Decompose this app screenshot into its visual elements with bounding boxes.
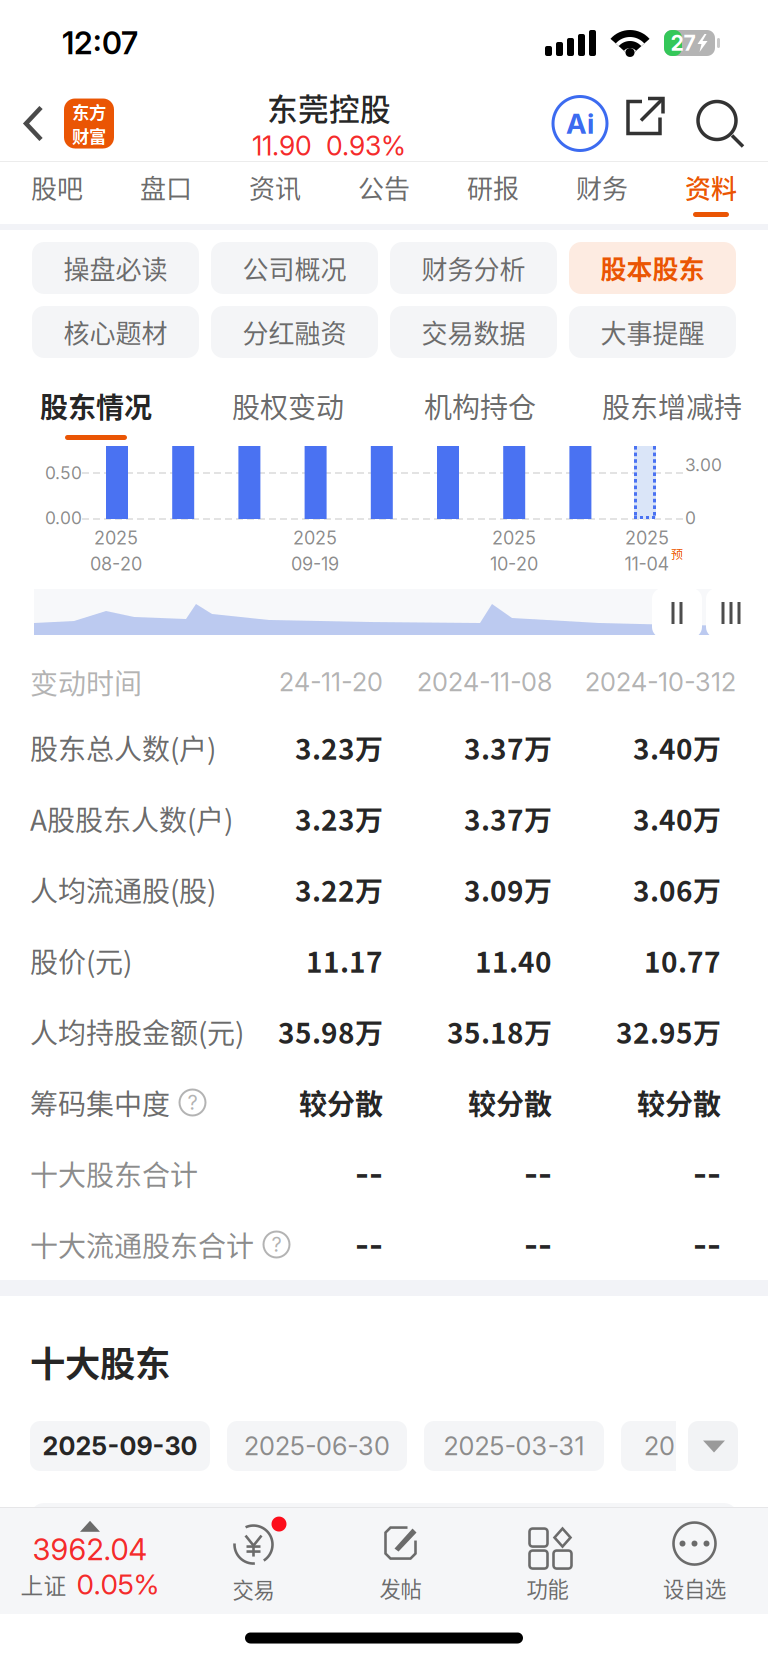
staticText: 0.50 (45, 462, 82, 483)
staticText: 分红融资 (242, 313, 346, 351)
button[interactable]: 2025-09-30 (30, 1421, 210, 1471)
staticText: ? (187, 1090, 197, 1115)
staticText: 10.77 (644, 940, 721, 981)
button[interactable]: AI助手 (544, 87, 616, 159)
staticText: 2025-06-30 (244, 1431, 390, 1461)
staticText: 12:07 (62, 24, 138, 61)
staticText: 盘口 (140, 168, 192, 206)
button[interactable]: 功能 (474, 1508, 621, 1614)
staticText: 交易 (232, 1574, 274, 1604)
button[interactable]: 搜索 (688, 87, 754, 159)
button[interactable]: 东方财富 (64, 98, 114, 148)
button[interactable]: 股吧 (2, 162, 111, 224)
button[interactable]: 双列 (652, 588, 702, 638)
staticText: 3.23万 (295, 727, 383, 768)
button[interactable]: 设自选 (621, 1508, 768, 1614)
staticText: 股权变动 (232, 385, 344, 426)
staticText: 2025 (492, 527, 536, 549)
staticText: 2024-11-08 (417, 667, 552, 697)
staticText: 3.22万 (295, 869, 383, 910)
button[interactable]: 操盘必读 (32, 242, 199, 294)
staticText: 11.17 (306, 940, 383, 981)
button[interactable]: 发帖 (327, 1508, 474, 1614)
button[interactable]: 机构持仓 (384, 372, 576, 444)
button[interactable]: 大事提醒 (569, 306, 736, 358)
staticText: 2025 (94, 527, 138, 549)
button[interactable]: 财务 (547, 162, 656, 224)
staticText: 上证 (20, 1568, 66, 1601)
staticText: 股东增减持 (602, 385, 742, 426)
staticText: 0.00 (45, 507, 82, 528)
staticText: 09-19 (291, 553, 339, 575)
button[interactable]: 股东情况 (0, 372, 192, 444)
staticText: 股价(元) (30, 940, 132, 981)
button[interactable]: 2025-06-30 (227, 1421, 407, 1471)
button[interactable]: 资讯 (220, 162, 329, 224)
staticText: 2 (721, 667, 736, 697)
button[interactable]: 返回 (4, 85, 64, 161)
staticText: 32.95万 (616, 1011, 721, 1052)
staticText: 操盘必读 (63, 249, 167, 287)
button[interactable]: 2025-03-31 (424, 1421, 604, 1471)
button[interactable]: 盘口 (111, 162, 220, 224)
button[interactable]: 3962.04 (0, 1508, 180, 1614)
staticText: 10-20 (490, 553, 538, 575)
staticText: 机构持仓 (424, 385, 536, 426)
staticText: 3.40万 (633, 727, 721, 768)
button[interactable]: 公司概况 (211, 242, 378, 294)
staticText: ? (271, 1232, 281, 1257)
staticText: 预 (671, 545, 683, 562)
staticText: 3.06万 (633, 869, 721, 910)
staticText: 0 (685, 507, 696, 528)
button[interactable]: 2025-12-31 (621, 1421, 768, 1471)
staticText: 较分散 (299, 1082, 383, 1123)
staticText: -- (524, 1226, 552, 1263)
button[interactable]: 核心题材 (32, 306, 199, 358)
button[interactable]: 资料 (656, 162, 765, 224)
staticText: 3.37万 (464, 727, 552, 768)
staticText: -- (524, 1155, 552, 1192)
staticText: 2025-09-30 (42, 1431, 197, 1461)
button[interactable]: 分享 (616, 87, 688, 159)
button[interactable]: 股本股东 (569, 242, 736, 294)
staticText: 08-20 (90, 553, 142, 575)
staticText: 2025-03-31 (443, 1431, 584, 1461)
staticText: 核心题材 (63, 313, 167, 351)
staticText: 财富 (72, 123, 106, 148)
button[interactable]: 研报 (438, 162, 547, 224)
staticText: 筹码集中度 (30, 1082, 170, 1123)
staticText: 人均持股金额(元) (30, 1011, 244, 1052)
staticText: 11-04 (624, 553, 669, 575)
staticText: 3.37万 (464, 798, 552, 839)
button[interactable]: 公告 (329, 162, 438, 224)
staticText: 研报 (467, 168, 519, 206)
button[interactable]: 股东增减持 (576, 372, 768, 444)
staticText: 变动时间 (30, 662, 142, 702)
staticText: 0.05% (76, 1567, 159, 1601)
staticText: 公司概况 (242, 249, 346, 287)
staticText: 财务 (576, 168, 628, 206)
button[interactable]: 财务分析 (390, 242, 557, 294)
staticText: 35.98万 (278, 1011, 383, 1052)
button[interactable]: 交易数据 (390, 306, 557, 358)
staticText: 股东情况 (40, 385, 152, 426)
button[interactable]: 交易 (180, 1508, 327, 1614)
staticText: 十大股东合计 (30, 1153, 198, 1194)
staticText: A股股东人数(户) (30, 798, 233, 839)
staticText: 2025-12-31 (644, 1431, 768, 1461)
staticText: 东莞控股 (267, 85, 391, 130)
button[interactable]: 分红融资 (211, 306, 378, 358)
staticText: 交易数据 (421, 313, 525, 351)
staticText: 2025 (293, 527, 337, 549)
button[interactable]: 更多日期 (688, 1421, 738, 1471)
staticText: 3.00 (685, 454, 722, 475)
button[interactable]: 股权变动 (192, 372, 384, 444)
staticText: 大事提醒 (600, 313, 704, 351)
staticText: 发帖 (379, 1573, 421, 1603)
staticText: 3.09万 (464, 869, 552, 910)
staticText: 十大股东 (30, 1336, 170, 1387)
button[interactable]: 三列 (706, 588, 756, 638)
staticText: -- (693, 1155, 721, 1192)
staticText: 3.23万 (295, 798, 383, 839)
staticText: -- (355, 1155, 383, 1192)
